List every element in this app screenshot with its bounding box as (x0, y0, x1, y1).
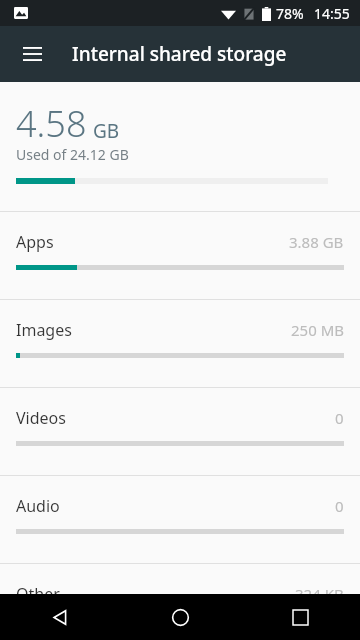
staticText: Apps (16, 231, 54, 253)
staticText: Internal shared storage (72, 41, 287, 67)
staticText: Audio (16, 495, 60, 517)
staticText: 78% (276, 4, 304, 23)
staticText: 14:55 (314, 4, 350, 23)
button[interactable]: Home (120, 594, 240, 640)
button[interactable]: Other (0, 564, 360, 640)
button[interactable]: Images (0, 300, 360, 387)
button[interactable]: Back (0, 594, 120, 640)
button[interactable]: Videos (0, 388, 360, 475)
button[interactable]: 4.58 (0, 82, 360, 211)
staticText: Images (16, 319, 72, 341)
button[interactable]: Apps (0, 212, 360, 299)
staticText: Videos (16, 407, 66, 429)
staticText: 4.58 (16, 99, 87, 148)
staticText: 0 (335, 496, 344, 516)
button[interactable]: Open navigation menu (8, 30, 56, 78)
staticText: 324 KB (295, 584, 344, 604)
staticText: Other (16, 583, 60, 605)
staticText: 0 (335, 408, 344, 428)
staticText: GB (93, 118, 120, 144)
staticText: 3.88 GB (289, 232, 344, 252)
staticText: Used of 24.12 GB (16, 145, 129, 164)
button[interactable]: Recent apps (240, 594, 360, 640)
button[interactable]: Audio (0, 476, 360, 563)
staticText: 250 MB (291, 320, 344, 340)
